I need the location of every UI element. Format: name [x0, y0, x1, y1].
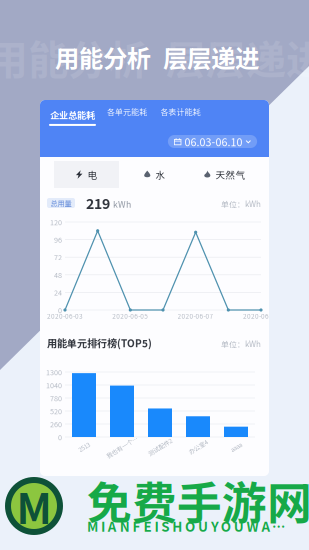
- staticText: MIANFEISHOUYOUWANG: [87, 516, 296, 536]
- staticText: 0: [58, 432, 62, 442]
- button[interactable]: 各单元能耗: [107, 106, 147, 117]
- staticText: 总用量: [50, 198, 71, 208]
- staticText: 各单元能耗: [107, 106, 147, 117]
- staticText: 1040: [46, 380, 62, 390]
- staticText: 电: [87, 167, 97, 181]
- button[interactable]: 各表计能耗: [160, 106, 200, 117]
- staticText: kWh: [113, 198, 131, 210]
- staticText: 用能分析 层层递进: [0, 28, 309, 86]
- button[interactable]: 水: [122, 161, 187, 188]
- staticText: 96: [54, 234, 62, 245]
- staticText: 天然气: [215, 167, 245, 181]
- button[interactable]: 天然气: [192, 161, 257, 188]
- staticText: 2020-06-03: [47, 311, 83, 321]
- staticText: 各表计能耗: [160, 106, 200, 117]
- button[interactable]: 06.03-06.10: [168, 135, 257, 148]
- staticText: 219: [86, 193, 110, 213]
- staticText: M: [16, 476, 51, 536]
- staticText: 06.03-06.10: [184, 134, 242, 149]
- staticText: aaaa: [230, 443, 242, 451]
- staticText: 520: [50, 406, 62, 416]
- staticText: 2020-06-05: [112, 311, 148, 321]
- staticText: 用能分析 层层递进: [55, 39, 259, 75]
- staticText: 780: [50, 393, 62, 403]
- staticText: 48: [54, 270, 62, 280]
- staticText: 单位：kWh: [221, 198, 261, 210]
- staticText: 1300: [46, 367, 62, 377]
- staticText: 24: [54, 287, 62, 298]
- staticText: 用能单元排行榜(TOP5): [47, 336, 152, 350]
- staticText: 2513: [78, 443, 90, 451]
- staticText: 72: [54, 252, 62, 262]
- staticText: 我也有一个…: [104, 443, 140, 451]
- button[interactable]: 电: [54, 161, 119, 188]
- staticText: 单位：kWh: [221, 338, 261, 350]
- staticText: 企业总能耗: [50, 108, 95, 121]
- staticText: 水: [155, 167, 165, 181]
- staticText: 2020-06-07: [178, 311, 214, 321]
- staticText: 0: [58, 305, 62, 315]
- staticText: 2020-06-09: [243, 311, 279, 321]
- staticText: 办公室4: [187, 443, 208, 451]
- staticText: 120: [50, 217, 62, 227]
- staticText: 免费手游网: [87, 468, 309, 532]
- staticText: 260: [50, 419, 62, 429]
- staticText: 测试配件2: [146, 443, 173, 451]
- button[interactable]: 企业总能耗: [49, 108, 96, 126]
